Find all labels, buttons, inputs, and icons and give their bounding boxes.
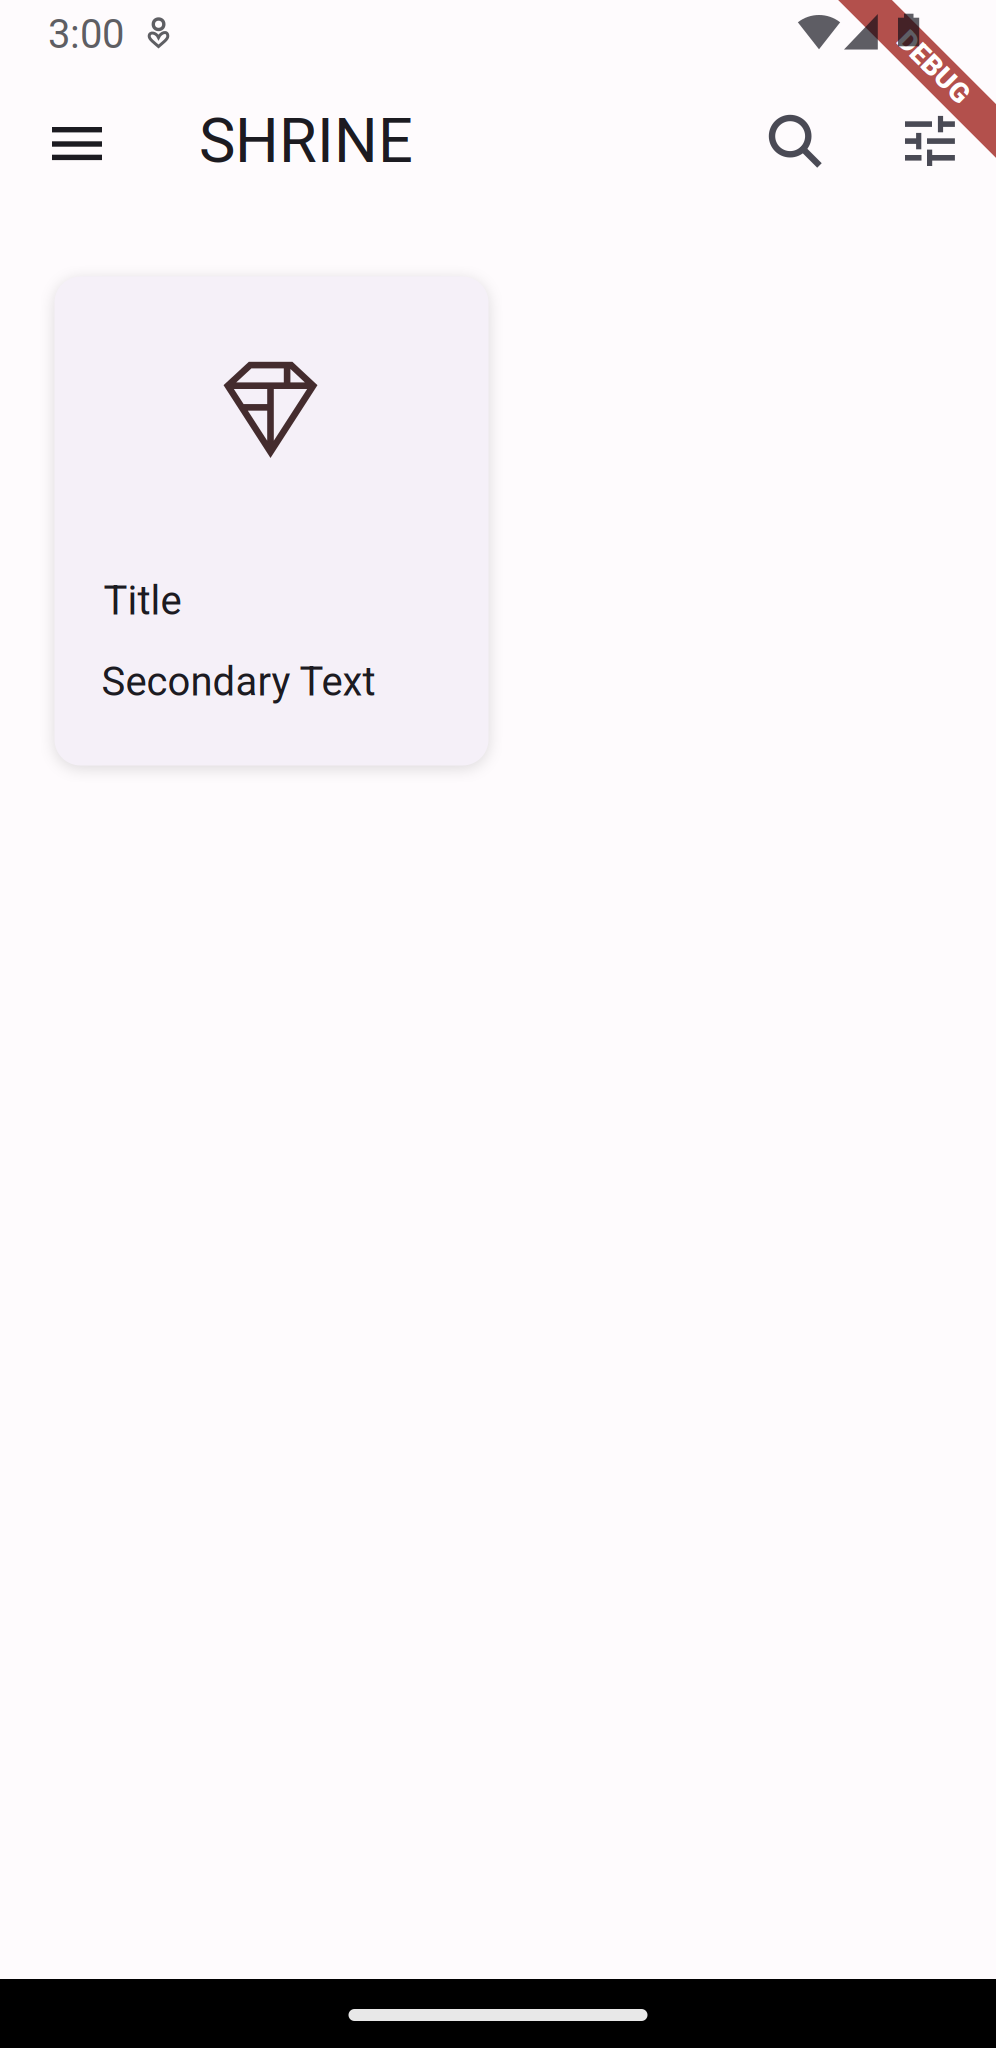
staticText: DEBUG <box>889 48 979 80</box>
button[interactable]: Title <box>54 276 488 765</box>
staticText: 3:00 <box>48 11 124 58</box>
staticText: Secondary Text <box>101 658 375 705</box>
button[interactable]: Menu <box>24 89 130 198</box>
staticText: SHRINE <box>199 105 413 177</box>
staticText: Title <box>103 577 181 624</box>
button[interactable]: Search <box>742 88 850 196</box>
button[interactable]: Filter <box>875 88 985 198</box>
